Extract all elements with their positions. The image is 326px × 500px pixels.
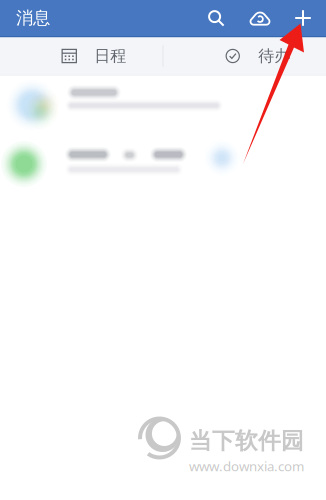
button[interactable]: 待办 [163, 37, 326, 74]
staticText: 消息 [16, 7, 50, 29]
staticText: 当下软件园 [189, 427, 304, 455]
staticText: 日程 [94, 46, 126, 66]
button[interactable]: Cloud calls [238, 0, 282, 35]
staticText: 待办 [258, 46, 290, 66]
staticText: www.downxia.com [189, 457, 304, 475]
button[interactable]: Search [194, 0, 238, 35]
button[interactable]: Add [282, 0, 324, 35]
button[interactable]: 日程 [0, 37, 162, 74]
